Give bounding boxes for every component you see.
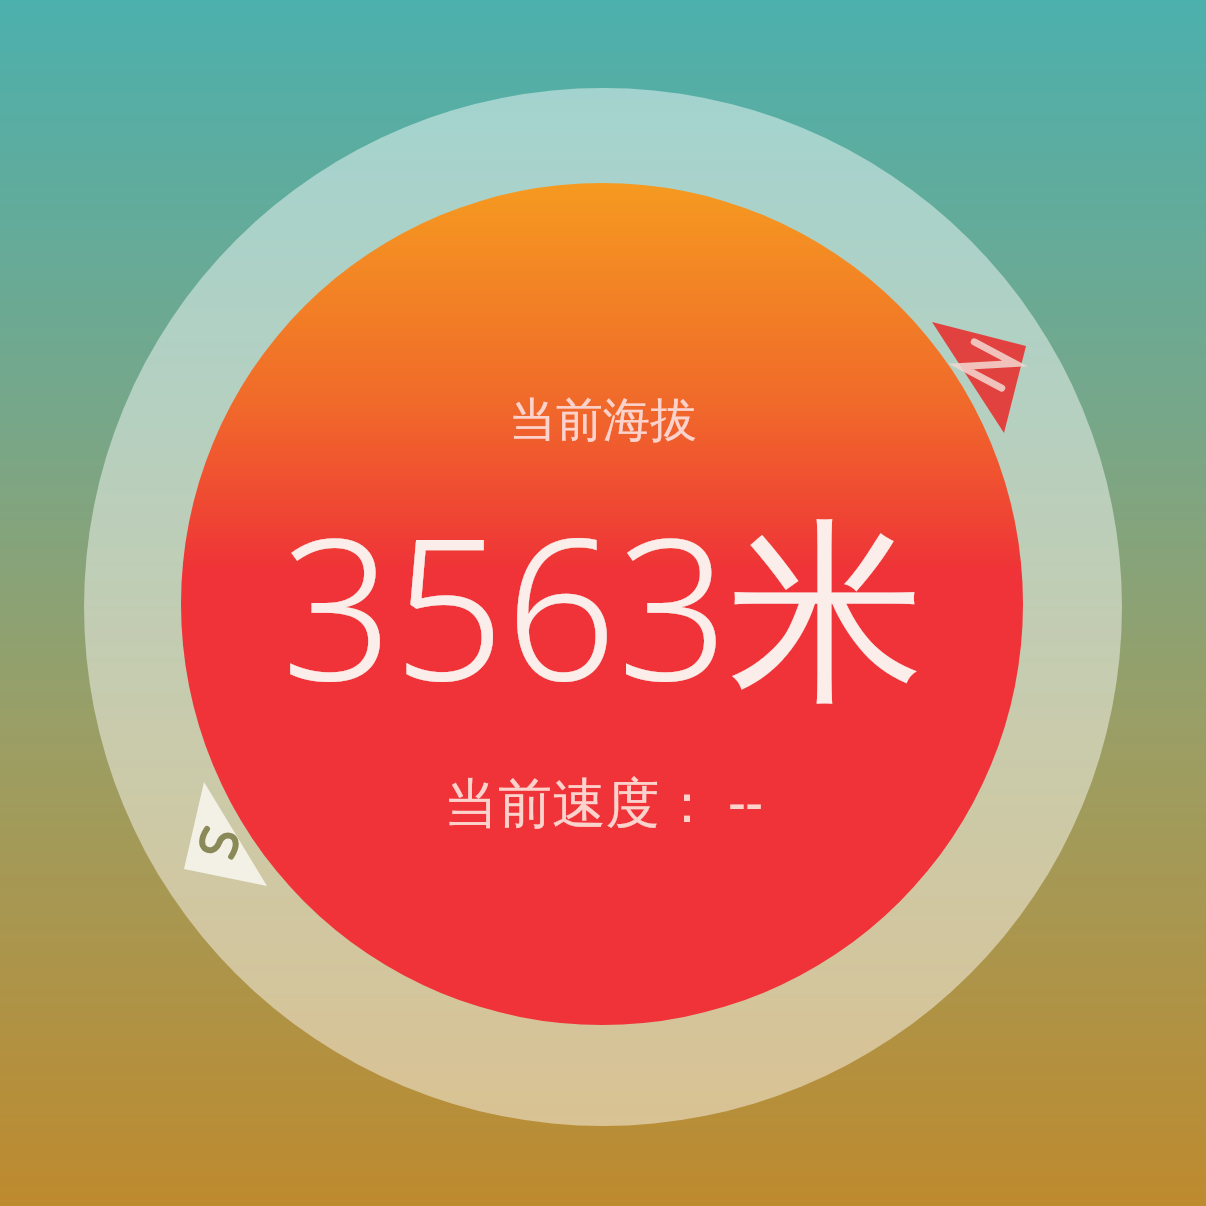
staticText: 当前海拔 [509, 391, 697, 450]
staticText: 3563米 [281, 470, 925, 738]
button[interactable]: Altimeter dial [0, 0, 1206, 1206]
staticText: 当前速度： -- [444, 764, 763, 838]
